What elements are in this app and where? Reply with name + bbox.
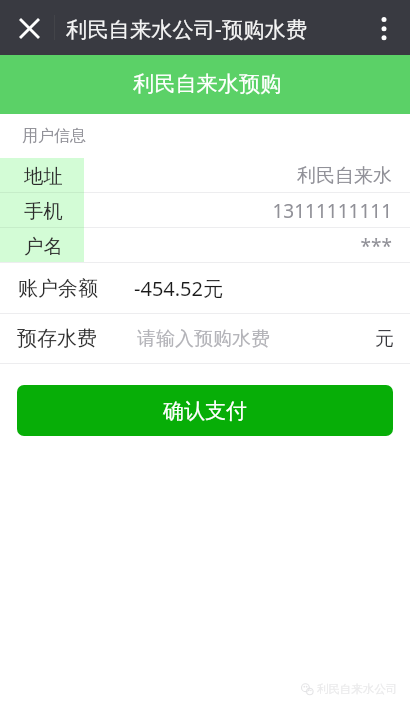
- staticText: 户名: [24, 234, 63, 258]
- staticText: 地址: [24, 164, 63, 188]
- staticText: 请输入预购水费: [137, 327, 375, 351]
- staticText: 用户信息: [22, 126, 86, 146]
- staticText: 利民自来水公司: [317, 682, 398, 696]
- staticText: 利民自来水公司-预购水费: [66, 14, 308, 43]
- button[interactable]: 账户余额: [0, 263, 410, 313]
- button[interactable]: Close: [11, 10, 47, 46]
- button[interactable]: 手机: [0, 193, 410, 227]
- staticText: 手机: [24, 199, 63, 223]
- button[interactable]: 地址: [0, 158, 410, 192]
- staticText: 元: [375, 327, 394, 351]
- button[interactable]: 确认支付: [17, 385, 393, 436]
- button[interactable]: 户名: [0, 228, 410, 262]
- staticText: -454.52元: [134, 275, 223, 302]
- staticText: 预存水费: [17, 326, 97, 351]
- button[interactable]: 预存水费: [0, 314, 410, 363]
- staticText: ***: [360, 233, 392, 259]
- staticText: 账户余额: [18, 276, 98, 301]
- staticText: 13111111111: [272, 198, 392, 224]
- button[interactable]: More options: [364, 8, 404, 48]
- staticText: 利民自来水预购: [133, 71, 282, 98]
- staticText: 确认支付: [163, 398, 247, 424]
- staticText: 利民自来水: [297, 164, 392, 188]
